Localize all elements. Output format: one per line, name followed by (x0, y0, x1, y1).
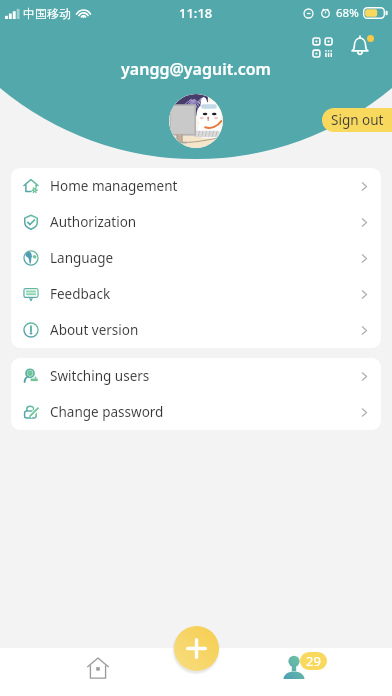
staticText: 11:18 (179, 4, 213, 22)
button[interactable]: About version (11, 312, 381, 348)
button[interactable]: Language (11, 240, 381, 276)
staticText: Change password (50, 403, 164, 421)
button[interactable]: Scan QR code (305, 30, 339, 64)
staticText: 68% (336, 5, 359, 21)
button[interactable]: Switching users (11, 358, 381, 394)
button[interactable]: Feedback (11, 276, 381, 312)
staticText: Authorization (50, 213, 137, 231)
button[interactable]: Add (174, 626, 219, 671)
staticText: Feedback (50, 285, 111, 303)
staticText: Sign out (331, 111, 384, 129)
staticText: Switching users (50, 367, 150, 385)
button[interactable]: Home management (11, 168, 381, 204)
button[interactable]: Home (58, 648, 138, 688)
staticText: yangg@yaguit.com (0, 58, 392, 80)
staticText: 中国移动 (23, 6, 71, 21)
staticText: 29 (306, 652, 321, 670)
button[interactable]: Sign out (322, 108, 392, 132)
button[interactable]: Notifications (343, 29, 377, 63)
button[interactable]: Users, 29 notifications (264, 648, 344, 696)
staticText: Home management (50, 177, 178, 195)
staticText: Language (50, 249, 114, 267)
button[interactable]: Change password (11, 394, 381, 430)
staticText: About version (50, 321, 139, 339)
button[interactable]: Authorization (11, 204, 381, 240)
